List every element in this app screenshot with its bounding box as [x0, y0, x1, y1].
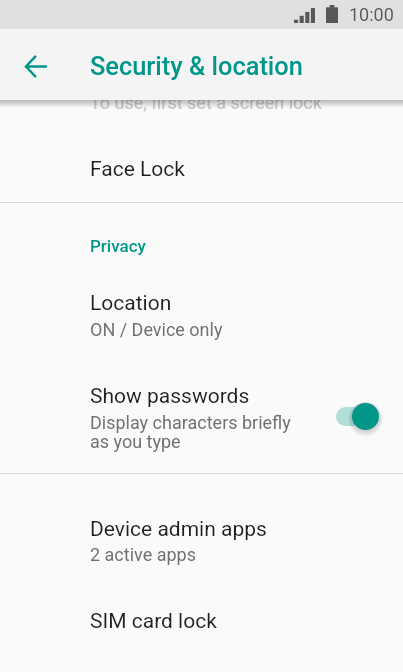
button[interactable]: Show passwords	[0, 370, 403, 473]
staticText: Display characters briefly as you type	[90, 412, 291, 453]
staticText: To use, first set a screen lock	[90, 92, 322, 113]
staticText: Privacy	[90, 236, 146, 256]
button[interactable]: Navigate up	[12, 43, 59, 90]
staticText: Security & location	[90, 51, 303, 81]
staticText: 2 active apps	[90, 544, 196, 565]
other: Battery full	[326, 5, 338, 23]
staticText: SIM card lock	[90, 609, 217, 634]
staticText: Device admin apps	[90, 517, 267, 542]
button[interactable]: SIM card lock	[0, 586, 403, 658]
staticText: Show passwords	[90, 384, 250, 409]
staticText: 10:00	[349, 4, 394, 25]
other: Mobile signal	[294, 8, 315, 23]
staticText: ON / Device only	[90, 319, 223, 340]
staticText: Face Lock	[90, 157, 185, 182]
staticText: Location	[90, 291, 172, 316]
button[interactable]: To use, first set a screen lock	[0, 60, 403, 120]
button[interactable]: Show passwords, on	[326, 392, 388, 438]
button[interactable]: Device admin apps, 2 active apps	[0, 498, 403, 578]
button[interactable]: Location, ON / Device only	[0, 276, 403, 340]
button[interactable]: Face Lock	[0, 120, 403, 202]
